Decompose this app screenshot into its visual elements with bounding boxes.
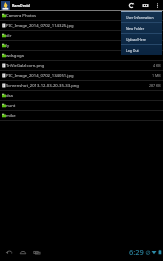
staticText: New Folder — [126, 26, 145, 31]
button[interactable]: Screenshot_2013-12-03-20-35-33.png — [0, 81, 163, 91]
staticText: TriVieGalzlcorn.png — [6, 63, 45, 69]
staticText: PIC_Image_2014_0702_114325.jpg — [6, 23, 74, 29]
staticText: 6:29 — [129, 247, 144, 257]
button[interactable]: More options — [152, 0, 163, 10]
button[interactable]: Camera Photos — [0, 11, 163, 21]
button[interactable]: Back — [2, 244, 16, 260]
button[interactable]: nunt — [0, 101, 163, 111]
staticText: ly — [6, 43, 10, 49]
button[interactable]: Refresh — [124, 0, 138, 10]
button[interactable]: User Information — [121, 12, 162, 22]
button[interactable]: TriVieGalzlcorn.png — [0, 61, 163, 71]
button[interactable]: mike — [0, 111, 163, 121]
staticText: Screenshot_2013-12-03-20-35-33.png — [6, 83, 79, 89]
staticText: Camera Photos — [6, 13, 37, 19]
staticText: dsa — [6, 93, 13, 99]
staticText: wdsgoga — [6, 53, 24, 59]
staticText: 4 KB — [153, 63, 161, 68]
button[interactable]: Recent apps — [30, 244, 44, 260]
button[interactable]: Log Out — [121, 45, 162, 55]
button[interactable]: wdsgoga — [0, 51, 163, 61]
button[interactable]: dir — [0, 31, 163, 41]
staticText: RamDroid — [12, 3, 30, 8]
staticText: dir — [6, 33, 12, 39]
staticText: 1 MB — [152, 73, 161, 78]
button[interactable]: New Folder — [121, 23, 162, 33]
button[interactable]: Camera — [138, 0, 152, 10]
staticText: User Information — [126, 15, 154, 20]
staticText: Log Out — [126, 48, 139, 53]
button[interactable]: PIC_Image_2014_0702_114325.jpg — [0, 21, 163, 31]
staticText: 287 KB — [149, 83, 161, 88]
button[interactable]: dsa — [0, 91, 163, 101]
staticText: mike — [6, 113, 16, 119]
button[interactable]: ly — [0, 41, 163, 51]
button[interactable]: Home — [16, 244, 30, 260]
button[interactable]: Upload Here — [121, 34, 162, 44]
button[interactable]: PIC_Image_2014_0702_134051.jpg — [0, 71, 163, 81]
staticText: PIC_Image_2014_0702_134051.jpg — [6, 73, 74, 79]
staticText: nunt — [6, 103, 16, 109]
staticText: Upload Here — [126, 37, 147, 42]
